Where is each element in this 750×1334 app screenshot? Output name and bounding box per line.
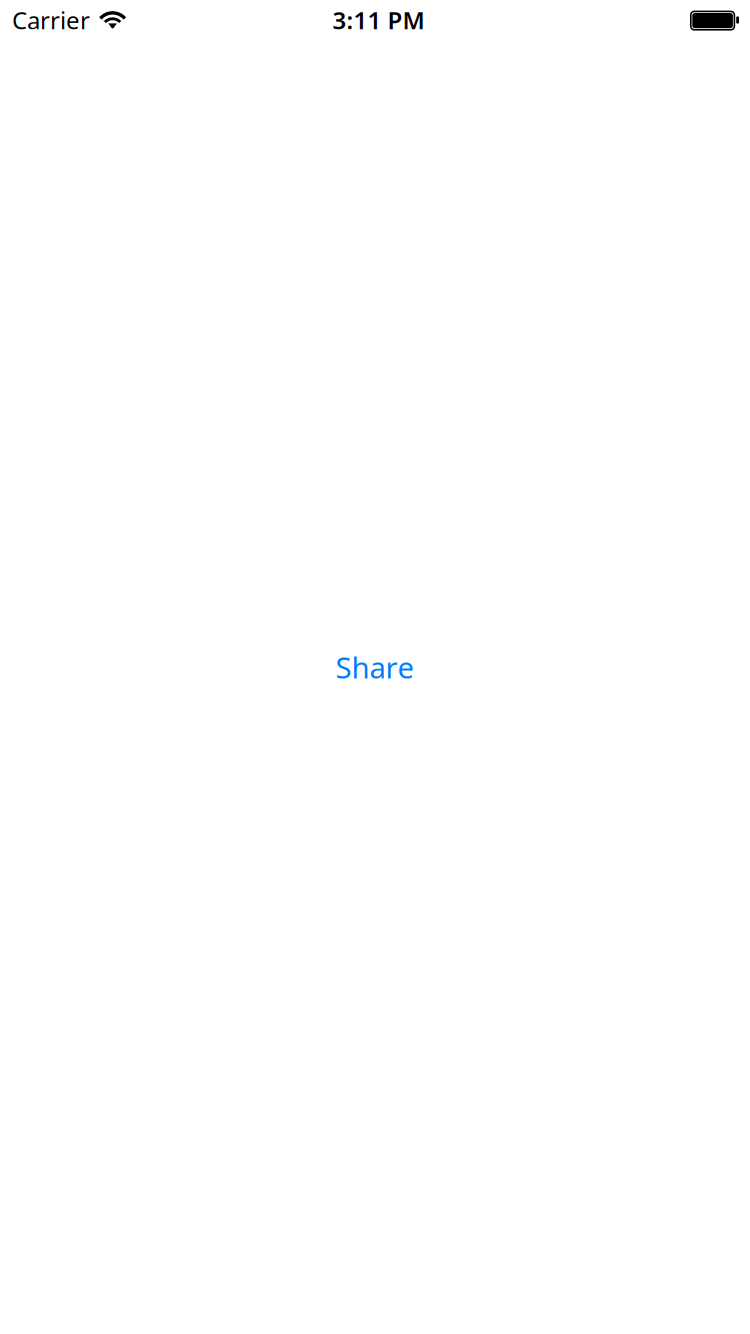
staticText: 3:11 PM [332, 4, 424, 36]
button[interactable]: Share [331, 623, 419, 711]
staticText: Carrier [12, 4, 90, 36]
staticText: Share [335, 647, 414, 686]
